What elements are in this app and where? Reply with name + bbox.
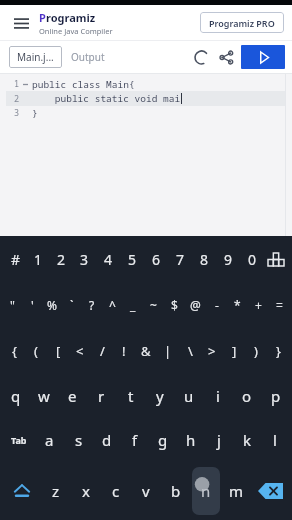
button[interactable]: x: [71, 464, 101, 518]
button[interactable]: 8: [192, 236, 216, 282]
button[interactable]: 2: [50, 236, 73, 282]
button[interactable]: ): [245, 328, 267, 374]
button[interactable]: w: [30, 374, 58, 418]
button[interactable]: [: [47, 328, 69, 374]
button[interactable]: Dark mode: [190, 46, 212, 68]
button[interactable]: Run: [241, 45, 285, 69]
staticText: ^: [109, 297, 116, 313]
button[interactable]: o: [232, 374, 261, 418]
button[interactable]: &: [135, 328, 157, 374]
button[interactable]: y: [145, 374, 174, 418]
button[interactable]: \: [179, 328, 201, 374]
button[interactable]: c: [101, 464, 131, 518]
button[interactable]: f: [121, 418, 149, 462]
button[interactable]: j: [205, 418, 233, 462]
button[interactable]: ^: [102, 282, 122, 328]
button[interactable]: %: [42, 282, 62, 328]
button[interactable]: i: [203, 374, 232, 418]
button[interactable]: s: [64, 418, 93, 462]
button[interactable]: v: [131, 464, 161, 518]
button[interactable]: p: [261, 374, 290, 418]
button[interactable]: Menu: [10, 12, 32, 34]
button[interactable]: l: [261, 418, 289, 462]
button[interactable]: m: [221, 464, 251, 518]
staticText: public static void mai: [32, 92, 181, 105]
button[interactable]: `: [62, 282, 82, 328]
button[interactable]: {: [3, 328, 25, 374]
button[interactable]: $: [164, 282, 185, 328]
button[interactable]: Output: [62, 46, 114, 68]
button[interactable]: <: [69, 328, 91, 374]
staticText: Output: [71, 50, 105, 64]
staticText: p: [271, 386, 281, 406]
staticText: `: [70, 297, 74, 313]
button[interactable]: ?: [82, 282, 102, 328]
button[interactable]: ': [22, 282, 42, 328]
staticText: }: [32, 107, 38, 120]
button[interactable]: >: [201, 328, 223, 374]
button[interactable]: 5: [120, 236, 144, 282]
button[interactable]: a: [35, 418, 64, 462]
button[interactable]: |: [157, 328, 179, 374]
staticText: x: [82, 481, 90, 501]
staticText: #: [11, 250, 21, 269]
staticText: &: [141, 342, 151, 360]
staticText: 2: [14, 93, 20, 105]
button[interactable]: !: [113, 328, 135, 374]
staticText: ?: [89, 297, 95, 313]
button[interactable]: k: [233, 418, 261, 462]
staticText: o: [242, 386, 252, 406]
staticText: 0: [248, 250, 257, 269]
staticText: ': [31, 297, 34, 313]
button[interactable]: Tab: [3, 418, 35, 462]
button[interactable]: #: [4, 236, 27, 282]
button[interactable]: @: [185, 282, 206, 328]
button[interactable]: Keyboard layout: [264, 236, 288, 282]
button[interactable]: 7: [168, 236, 192, 282]
button[interactable]: =: [269, 282, 290, 328]
button[interactable]: q: [2, 374, 30, 418]
button[interactable]: h: [177, 418, 205, 462]
button[interactable]: 4: [96, 236, 120, 282]
button[interactable]: ": [2, 282, 22, 328]
button[interactable]: P: [39, 10, 113, 36]
button[interactable]: ~: [143, 282, 164, 328]
staticText: [: [56, 342, 61, 360]
button[interactable]: r: [87, 374, 116, 418]
button[interactable]: 3: [73, 236, 96, 282]
button[interactable]: Backspace: [251, 464, 289, 518]
staticText: Tab: [11, 434, 27, 446]
staticText: 4: [104, 250, 113, 269]
button[interactable]: (: [25, 328, 47, 374]
button[interactable]: Share: [215, 46, 237, 68]
button[interactable]: d: [93, 418, 121, 462]
button[interactable]: e: [58, 374, 87, 418]
staticText: e: [68, 386, 77, 406]
button[interactable]: t: [116, 374, 145, 418]
staticText: d: [102, 430, 112, 450]
staticText: t: [128, 386, 134, 406]
button[interactable]: Programiz PRO: [200, 12, 284, 33]
button[interactable]: /: [91, 328, 113, 374]
staticText: s: [75, 430, 83, 450]
button[interactable]: u: [174, 374, 203, 418]
button[interactable]: +: [248, 282, 269, 328]
button[interactable]: b: [161, 464, 191, 518]
button[interactable]: 1: [27, 236, 50, 282]
button[interactable]: 6: [144, 236, 168, 282]
staticText: /: [100, 342, 105, 360]
button[interactable]: 0: [240, 236, 264, 282]
button[interactable]: g: [149, 418, 177, 462]
button[interactable]: n: [192, 467, 220, 515]
button[interactable]: ]: [223, 328, 245, 374]
button[interactable]: -: [206, 282, 227, 328]
button[interactable]: 9: [216, 236, 240, 282]
button[interactable]: Main.j...: [9, 46, 62, 68]
staticText: rogramiz: [46, 10, 96, 25]
button[interactable]: }: [267, 328, 289, 374]
button[interactable]: _: [122, 282, 143, 328]
button[interactable]: *: [227, 282, 248, 328]
button[interactable]: z: [41, 464, 71, 518]
button[interactable]: Shift: [3, 464, 41, 518]
staticText: 8: [200, 250, 209, 269]
